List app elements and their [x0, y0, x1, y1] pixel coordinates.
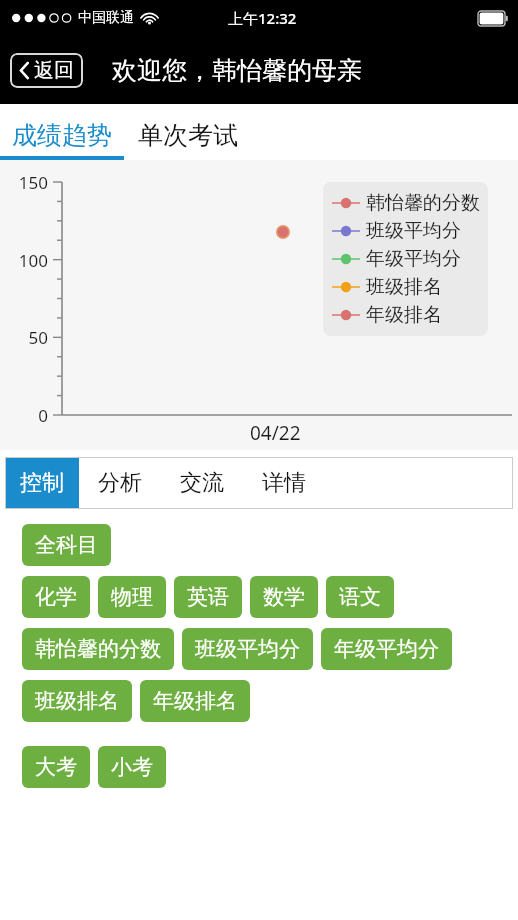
staticText: 欢迎您，韩怡馨的母亲: [112, 55, 362, 86]
staticText: 详情: [262, 469, 306, 497]
staticText: 班级排名: [35, 688, 119, 714]
staticText: 班级排名: [366, 275, 442, 299]
staticText: 150: [2, 171, 48, 194]
staticText: 成绩趋势: [12, 120, 112, 151]
staticText: 年级平均分: [334, 636, 439, 662]
staticText: 大考: [35, 754, 77, 780]
staticText: 100: [2, 249, 48, 272]
staticText: 英语: [187, 584, 229, 610]
staticText: 年级排名: [366, 303, 442, 327]
button[interactable]: 数学: [250, 576, 318, 618]
button[interactable]: 班级排名: [22, 680, 132, 722]
staticText: 班级平均分: [366, 219, 461, 243]
button[interactable]: 物理: [98, 576, 166, 618]
staticText: 班级平均分: [195, 636, 300, 662]
staticText: 50: [2, 326, 48, 349]
button[interactable]: 年级平均分: [321, 628, 452, 670]
button[interactable]: 返回: [10, 53, 83, 88]
staticText: 小考: [111, 754, 153, 780]
staticText: 交流: [180, 469, 224, 497]
staticText: 语文: [339, 584, 381, 610]
staticText: 物理: [111, 584, 153, 610]
staticText: 年级平均分: [366, 247, 461, 271]
staticText: 全科目: [35, 532, 98, 558]
button[interactable]: 大考: [22, 746, 90, 788]
staticText: 单次考试: [138, 120, 238, 151]
button[interactable]: 语文: [326, 576, 394, 618]
button[interactable]: 年级排名: [140, 680, 250, 722]
staticText: 化学: [35, 584, 77, 610]
button[interactable]: 小考: [98, 746, 166, 788]
button[interactable]: 分析: [79, 457, 161, 509]
staticText: 上午12:32: [228, 8, 297, 28]
staticText: 返回: [34, 58, 74, 83]
staticText: 04/22: [250, 420, 301, 446]
staticText: 数学: [263, 584, 305, 610]
button[interactable]: 韩怡馨的分数: [22, 628, 174, 670]
button[interactable]: 控制: [5, 457, 79, 509]
button[interactable]: 全科目: [22, 524, 111, 566]
button[interactable]: 班级平均分: [182, 628, 313, 670]
button[interactable]: 英语: [174, 576, 242, 618]
staticText: 年级排名: [153, 688, 237, 714]
staticText: 韩怡馨的分数: [35, 636, 161, 662]
button[interactable]: 交流: [161, 457, 243, 509]
button[interactable]: 详情: [243, 457, 325, 509]
button[interactable]: 化学: [22, 576, 90, 618]
staticText: 0: [2, 404, 48, 427]
staticText: 韩怡馨的分数: [366, 191, 480, 215]
staticText: 控制: [20, 469, 64, 497]
button[interactable]: 单次考试: [124, 120, 246, 160]
staticText: 分析: [98, 469, 142, 497]
staticText: 中国联通: [78, 9, 134, 27]
button[interactable]: 成绩趋势: [0, 120, 124, 160]
